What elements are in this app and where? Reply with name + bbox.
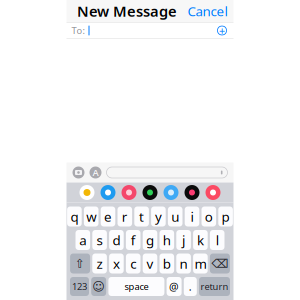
staticText: . (189, 279, 192, 294)
button[interactable]: iMessage app (79, 185, 94, 200)
staticText: y (155, 208, 162, 225)
button[interactable]: l (210, 230, 224, 250)
button[interactable]: b (159, 253, 174, 273)
button[interactable]: t (134, 206, 149, 226)
button[interactable]: iMessage app (121, 185, 136, 200)
staticText: A (92, 166, 98, 179)
button[interactable]: n (176, 253, 191, 273)
button[interactable]: ⌫ (210, 253, 230, 273)
staticText: r (122, 208, 128, 225)
button[interactable]: x (109, 253, 124, 273)
button[interactable]: 123 (70, 277, 89, 296)
button[interactable]: v (143, 253, 157, 273)
staticText: m (194, 255, 206, 272)
button[interactable]: Cancel (187, 2, 233, 20)
staticText: b (163, 255, 171, 272)
staticText: e (104, 208, 112, 225)
staticText: t (139, 208, 144, 225)
staticText: k (197, 231, 204, 249)
button[interactable]: ☺ (91, 277, 106, 296)
button[interactable]: i (185, 206, 199, 226)
staticText: space (124, 280, 148, 293)
button[interactable]: y (151, 206, 166, 226)
button[interactable]: u (168, 206, 182, 226)
staticText: i (190, 208, 193, 225)
button[interactable]: w (84, 206, 98, 226)
staticText: 123 (72, 280, 87, 293)
button[interactable]: f (126, 230, 140, 250)
staticText: Cancel (187, 2, 227, 20)
button[interactable]: space (108, 277, 164, 296)
staticText: New Message (77, 1, 177, 21)
staticText: c (130, 255, 136, 272)
staticText: w (86, 208, 96, 225)
staticText: f (131, 231, 136, 249)
button[interactable]: h (159, 230, 174, 250)
button[interactable]: iMessage app (205, 185, 220, 200)
button[interactable]: iMessage app (163, 185, 178, 200)
button[interactable]: iMessage app (142, 185, 157, 200)
button[interactable]: iMessage app (184, 185, 199, 200)
staticText: ⌫ (211, 257, 228, 270)
staticText: j (182, 231, 185, 249)
staticText: x (113, 255, 120, 272)
staticText: n (180, 255, 188, 272)
button[interactable]: r (117, 206, 132, 226)
staticText: l (216, 231, 219, 249)
button[interactable]: ⇧ (70, 253, 90, 273)
button[interactable]: e (101, 206, 115, 226)
button[interactable]: a (75, 230, 90, 250)
button[interactable]: App Store (89, 166, 101, 178)
button[interactable]: s (92, 230, 107, 250)
staticText: u (171, 208, 179, 225)
staticText: To: (71, 24, 85, 37)
staticText: p (222, 208, 230, 225)
button[interactable]: d (109, 230, 124, 250)
staticText: q (70, 208, 78, 225)
staticText: ☺ (92, 280, 105, 293)
button[interactable]: iMessage text field (106, 167, 227, 178)
button[interactable]: p (218, 206, 233, 226)
button[interactable]: m (193, 253, 208, 273)
staticText: return (200, 280, 228, 293)
button[interactable]: k (193, 230, 208, 250)
button[interactable]: c (126, 253, 140, 273)
button[interactable]: o (201, 206, 216, 226)
staticText: o (205, 208, 213, 225)
staticText: ⇧ (75, 257, 85, 270)
staticText: v (146, 255, 153, 272)
button[interactable]: Camera (72, 166, 84, 178)
staticText: + (219, 23, 225, 38)
staticText: s (97, 231, 103, 249)
button[interactable]: @ (167, 277, 182, 296)
button[interactable]: iMessage app (100, 185, 115, 200)
staticText: @ (169, 279, 179, 294)
button[interactable]: Add contact (215, 24, 228, 37)
button[interactable]: g (143, 230, 157, 250)
button[interactable]: return (199, 277, 230, 296)
button[interactable]: . (184, 277, 197, 296)
button[interactable]: q (67, 206, 82, 226)
staticText: a (79, 231, 86, 249)
staticText: h (163, 231, 171, 249)
staticText: g (146, 231, 154, 249)
staticText: d (112, 231, 120, 249)
button[interactable]: j (176, 230, 191, 250)
button[interactable]: z (92, 253, 107, 273)
staticText: z (97, 255, 103, 272)
